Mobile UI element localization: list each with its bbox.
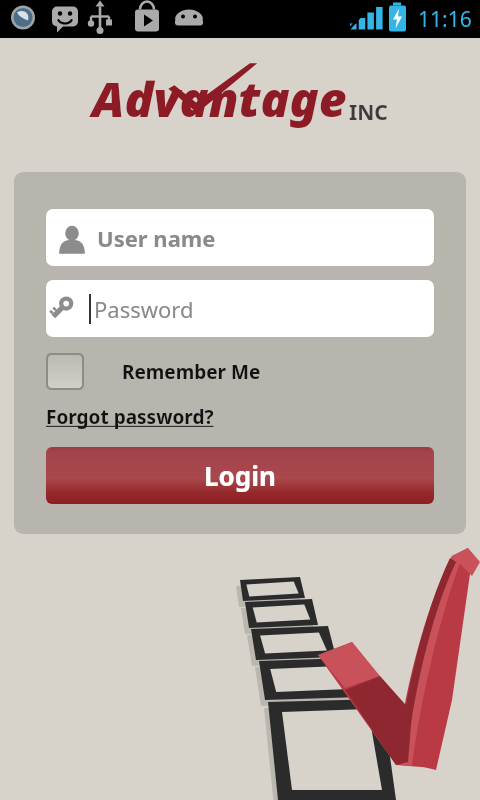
staticText: Login bbox=[204, 458, 276, 493]
staticText: User name bbox=[97, 223, 216, 253]
button[interactable]: Login bbox=[46, 447, 434, 504]
staticText: INC bbox=[349, 98, 388, 127]
staticText: Remember Me bbox=[122, 359, 261, 385]
staticText: Forgot password? bbox=[46, 404, 214, 430]
button[interactable]: Password bbox=[46, 280, 434, 337]
button[interactable]: Forgot password? bbox=[46, 404, 214, 430]
button[interactable]: Remember Me bbox=[46, 353, 261, 390]
staticText: 11:16 bbox=[418, 5, 472, 34]
button[interactable]: User name bbox=[46, 209, 434, 266]
staticText: Password bbox=[94, 294, 194, 324]
staticText: Advantage bbox=[92, 66, 347, 131]
